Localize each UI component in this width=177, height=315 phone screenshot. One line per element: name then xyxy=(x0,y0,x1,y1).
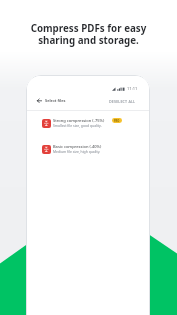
staticText: Smallest file size, good quality. xyxy=(53,123,102,128)
staticText: PRO xyxy=(114,119,120,123)
staticText: Strong compression (-75%) xyxy=(53,118,105,123)
button[interactable]: Select files xyxy=(45,98,66,103)
staticText: Compress PDFs for easy sharing and stora… xyxy=(0,22,177,47)
staticText: Basic compression (-40%) xyxy=(53,144,102,149)
button[interactable]: Basic compression (-40%) xyxy=(27,143,149,165)
staticText: 11:11 xyxy=(127,86,138,92)
staticText: Medium file size, high quality. xyxy=(53,149,101,154)
button[interactable]: DESELECT ALL xyxy=(109,99,136,104)
button[interactable]: Strong compression (-75%) xyxy=(27,117,149,139)
